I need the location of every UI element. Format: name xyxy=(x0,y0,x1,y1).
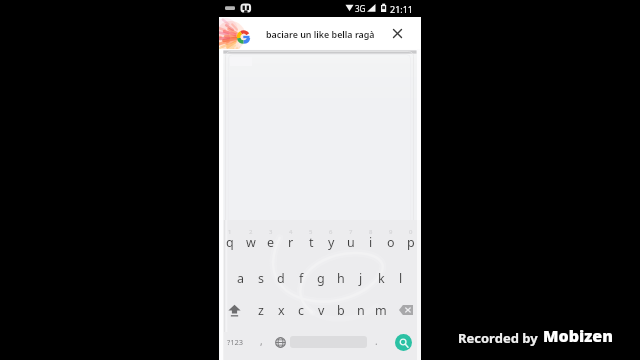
staticText: t xyxy=(309,234,314,251)
staticText: f xyxy=(299,270,304,287)
button[interactable]: 2 xyxy=(240,223,261,256)
button[interactable]: x xyxy=(271,294,291,326)
button[interactable]: 0 xyxy=(401,223,421,256)
staticText: 21:11 xyxy=(390,3,414,15)
staticText: q xyxy=(226,234,234,251)
staticText: k xyxy=(378,270,385,287)
staticText: z xyxy=(258,302,264,319)
staticText: o xyxy=(387,234,395,251)
staticText: l xyxy=(399,270,403,287)
button[interactable]: l xyxy=(391,262,411,294)
staticText: u xyxy=(347,234,355,251)
button[interactable]: Search xyxy=(395,334,412,351)
button[interactable]: f xyxy=(291,262,311,294)
button[interactable]: 9 xyxy=(381,223,401,256)
staticText: 6 xyxy=(329,228,333,236)
staticText: a xyxy=(237,270,245,287)
staticText: g xyxy=(317,270,325,287)
staticText: r xyxy=(288,234,294,251)
staticText: s xyxy=(258,270,264,287)
button[interactable]: m xyxy=(371,294,391,326)
staticText: 2 xyxy=(249,228,253,236)
button[interactable]: 8 xyxy=(361,223,381,256)
staticText: e xyxy=(267,234,275,251)
button[interactable]: s xyxy=(251,262,271,294)
button[interactable]: Clear search xyxy=(387,23,407,43)
staticText: 3G xyxy=(355,3,366,14)
staticText: w xyxy=(246,234,256,251)
button[interactable]: n xyxy=(351,294,371,326)
staticText: d xyxy=(277,270,285,287)
button[interactable]: Backspace xyxy=(391,294,421,326)
button[interactable]: g xyxy=(311,262,331,294)
staticText: b xyxy=(337,302,345,319)
button[interactable]: 7 xyxy=(341,223,361,256)
staticText: y xyxy=(328,234,335,251)
button[interactable]: h xyxy=(331,262,351,294)
staticText: m xyxy=(375,302,387,319)
button[interactable]: 4 xyxy=(281,223,301,256)
staticText: 3 xyxy=(269,228,273,236)
button[interactable]: k xyxy=(371,262,391,294)
button[interactable]: 3 xyxy=(261,223,281,256)
staticText: 4 xyxy=(289,228,293,236)
staticText: n xyxy=(357,302,365,319)
staticText: Recorded by xyxy=(458,329,538,347)
staticText: 8 xyxy=(369,228,373,236)
staticText: , xyxy=(260,334,263,348)
button[interactable]: d xyxy=(271,262,291,294)
staticText: 0 xyxy=(409,228,413,236)
staticText: . xyxy=(375,334,378,348)
staticText: x xyxy=(278,302,285,319)
button[interactable]: z xyxy=(250,294,271,326)
staticText: 1 xyxy=(228,228,232,236)
button[interactable]: Change language xyxy=(270,325,290,359)
staticText: p xyxy=(407,234,415,251)
staticText: v xyxy=(318,302,325,319)
staticText: ?123 xyxy=(227,337,244,347)
staticText: 9 xyxy=(389,228,393,236)
button[interactable]: c xyxy=(291,294,311,326)
staticText: 7 xyxy=(349,228,353,236)
button[interactable]: a xyxy=(230,262,251,294)
button[interactable]: j xyxy=(351,262,371,294)
button[interactable]: 6 xyxy=(321,223,341,256)
button[interactable]: Shift xyxy=(219,294,250,326)
button[interactable]: v xyxy=(311,294,331,326)
button[interactable]: 5 xyxy=(301,223,321,256)
staticText: i xyxy=(369,234,373,251)
staticText: h xyxy=(337,270,345,287)
staticText: 5 xyxy=(309,228,313,236)
staticText: baciare un like bella ragà xyxy=(266,28,375,40)
staticText: j xyxy=(359,270,363,287)
button[interactable]: , xyxy=(252,325,270,359)
button[interactable]: b xyxy=(331,294,351,326)
button[interactable]: 1 xyxy=(219,223,240,256)
staticText: c xyxy=(298,302,305,319)
staticText: Mobizen xyxy=(543,325,613,347)
button[interactable]: . xyxy=(367,325,385,359)
button[interactable]: ?123 xyxy=(219,325,252,359)
